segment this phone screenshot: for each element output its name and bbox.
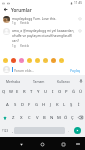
staticText: V (36, 115, 39, 121)
staticText: Z (12, 115, 15, 121)
button[interactable]: Paylaş (69, 68, 82, 72)
button[interactable]: Q (1, 86, 7, 98)
button[interactable]: J (47, 98, 54, 111)
button[interactable]: Kullanıcı (51, 75, 76, 86)
staticText: Tamam (33, 79, 45, 83)
button[interactable]: Back (17, 140, 25, 148)
button[interactable]: Yorum ekle... (14, 68, 69, 72)
button[interactable]: K (54, 98, 61, 111)
staticText: Ü (79, 89, 83, 95)
button[interactable]: Emoji (33, 56, 41, 64)
button[interactable]: O (56, 86, 63, 98)
button[interactable]: Back (2, 6, 9, 13)
button[interactable]: N (48, 111, 55, 124)
button[interactable]: Backspace (76, 111, 84, 124)
button[interactable]: Emoji (49, 56, 57, 64)
button[interactable]: Z (9, 111, 17, 124)
staticText: Q (2, 89, 6, 95)
button[interactable]: Emoji (9, 56, 17, 64)
button[interactable]: M (55, 111, 62, 124)
staticText: C (28, 115, 31, 121)
button[interactable]: V (33, 111, 41, 124)
button[interactable]: Like (77, 28, 83, 34)
button[interactable]: Emoji (41, 56, 49, 64)
staticText: B (43, 115, 46, 121)
staticText: Kullanıcı (57, 79, 70, 83)
staticText: P (65, 89, 68, 95)
button[interactable]: Emoji (1, 56, 9, 64)
staticText: Yorum ekle... (14, 68, 35, 72)
button[interactable]: Send (71, 126, 84, 135)
staticText: A (6, 102, 9, 108)
staticText: E (16, 89, 19, 95)
staticText: X (20, 115, 23, 121)
staticText: Yorumlar (11, 7, 32, 13)
staticText: R (23, 89, 26, 95)
button[interactable]: U (42, 86, 49, 98)
staticText: 1g Yanıtla (12, 21, 29, 25)
button[interactable]: Shift (1, 111, 9, 124)
button[interactable]: Y (35, 86, 42, 98)
button[interactable]: Switch keyboard (74, 140, 82, 148)
button[interactable]: T (28, 86, 35, 98)
staticText: Y (37, 89, 40, 95)
staticText: L (63, 102, 66, 108)
staticText: 11:45 (74, 1, 83, 5)
button[interactable]: R (21, 86, 28, 98)
button[interactable]: Ğ (70, 86, 77, 98)
staticText: 1g Yanıtla (12, 44, 29, 48)
button[interactable]: P (63, 86, 70, 98)
button[interactable]: D (19, 98, 26, 111)
staticText: , (12, 128, 13, 133)
staticText: Ğ (72, 89, 76, 95)
button[interactable]: ama_a @maydaydogg mi yel kaaaardan, ofsd… (0, 27, 85, 50)
button[interactable]: ?123 (1, 126, 10, 135)
button[interactable]: Like (77, 16, 83, 22)
button[interactable]: Ç (69, 111, 76, 124)
button[interactable]: Tamam (26, 75, 51, 86)
button[interactable]: İ (75, 98, 82, 111)
button[interactable]: Ü (77, 86, 84, 98)
button[interactable]: Emoji (57, 56, 65, 64)
button[interactable]: Ş (68, 98, 75, 111)
button[interactable]: Emoji (25, 56, 33, 64)
staticText: J (50, 102, 52, 108)
staticText: G (35, 102, 39, 108)
button[interactable]: Voice input (76, 75, 85, 86)
staticText: D (21, 102, 25, 108)
button[interactable]: B (41, 111, 48, 124)
button[interactable]: I (49, 86, 56, 98)
button[interactable]: Emoji (17, 56, 25, 64)
staticText: Ş (70, 102, 73, 108)
staticText: U (44, 89, 48, 95)
button[interactable]: F (26, 98, 33, 111)
button[interactable]: E (14, 86, 21, 98)
button[interactable]: Home (38, 140, 46, 148)
button[interactable]: L (61, 98, 68, 111)
button[interactable]: H (40, 98, 47, 111)
button[interactable]: C (25, 111, 33, 124)
staticText: T (30, 89, 33, 95)
staticText: İ (78, 102, 80, 108)
button[interactable]: Recents (59, 140, 67, 148)
staticText: Ö (64, 115, 68, 121)
staticText: maydaydogg Yum. Love this. (12, 16, 57, 20)
button[interactable]: S (11, 98, 19, 111)
button[interactable]: G (33, 98, 40, 111)
button[interactable]: Ö (62, 111, 69, 124)
button[interactable]: maydaydogg Yum. Love this. (0, 15, 85, 27)
button[interactable]: , (10, 126, 14, 135)
staticText: F (28, 102, 31, 108)
staticText: M (57, 115, 61, 121)
button[interactable]: Merhaba (0, 75, 26, 86)
button[interactable]: A (3, 98, 11, 111)
staticText: H (42, 102, 46, 108)
staticText: Ç (71, 115, 74, 121)
staticText: ?123 (2, 129, 9, 133)
staticText: Merhaba (6, 79, 20, 83)
staticText: K (56, 102, 59, 108)
button[interactable]: W (7, 86, 14, 98)
button[interactable]: X (17, 111, 25, 124)
